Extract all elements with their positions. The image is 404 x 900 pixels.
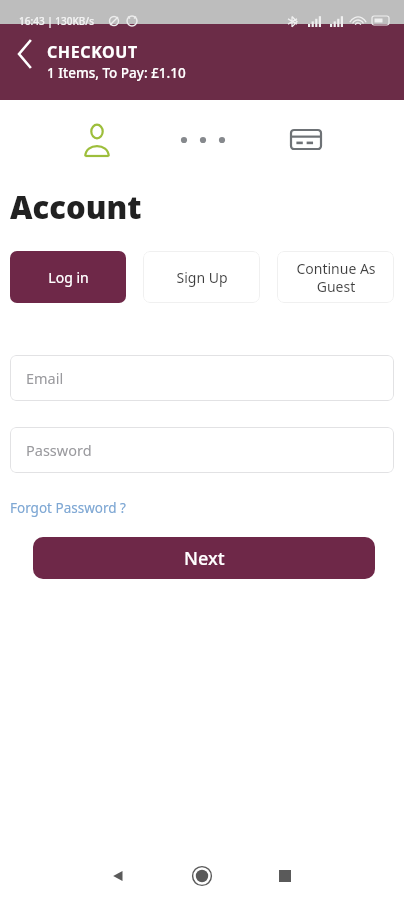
button[interactable]: Recent apps <box>263 852 307 900</box>
button[interactable]: Password <box>10 427 394 473</box>
button[interactable]: Payment step <box>278 112 334 168</box>
staticText: Log in <box>48 268 89 287</box>
staticText: 16:43 | 130KB/s <box>19 14 95 28</box>
staticText: Forgot Password ? <box>10 499 126 517</box>
button[interactable]: Email <box>10 355 394 401</box>
button[interactable]: Next <box>33 537 375 579</box>
staticText: Account <box>10 186 142 228</box>
button[interactable]: Account step <box>0 112 202 168</box>
button[interactable]: Forgot Password ? <box>10 499 126 517</box>
button[interactable]: Sign Up <box>143 251 260 303</box>
staticText: CHECKOUT <box>47 41 138 63</box>
staticText: Continue As Guest <box>296 259 376 296</box>
staticText: Email <box>26 368 64 388</box>
button[interactable]: Home <box>180 852 224 900</box>
button[interactable]: Continue As Guest <box>277 251 394 303</box>
staticText: Next <box>184 546 225 571</box>
staticText: Password <box>26 440 92 460</box>
button[interactable]: Back <box>96 852 140 900</box>
staticText: 1 Items, To Pay: £1.10 <box>47 64 186 82</box>
button[interactable]: Log in <box>10 251 126 303</box>
staticText: Sign Up <box>176 268 228 287</box>
button[interactable]: Back <box>4 36 46 72</box>
